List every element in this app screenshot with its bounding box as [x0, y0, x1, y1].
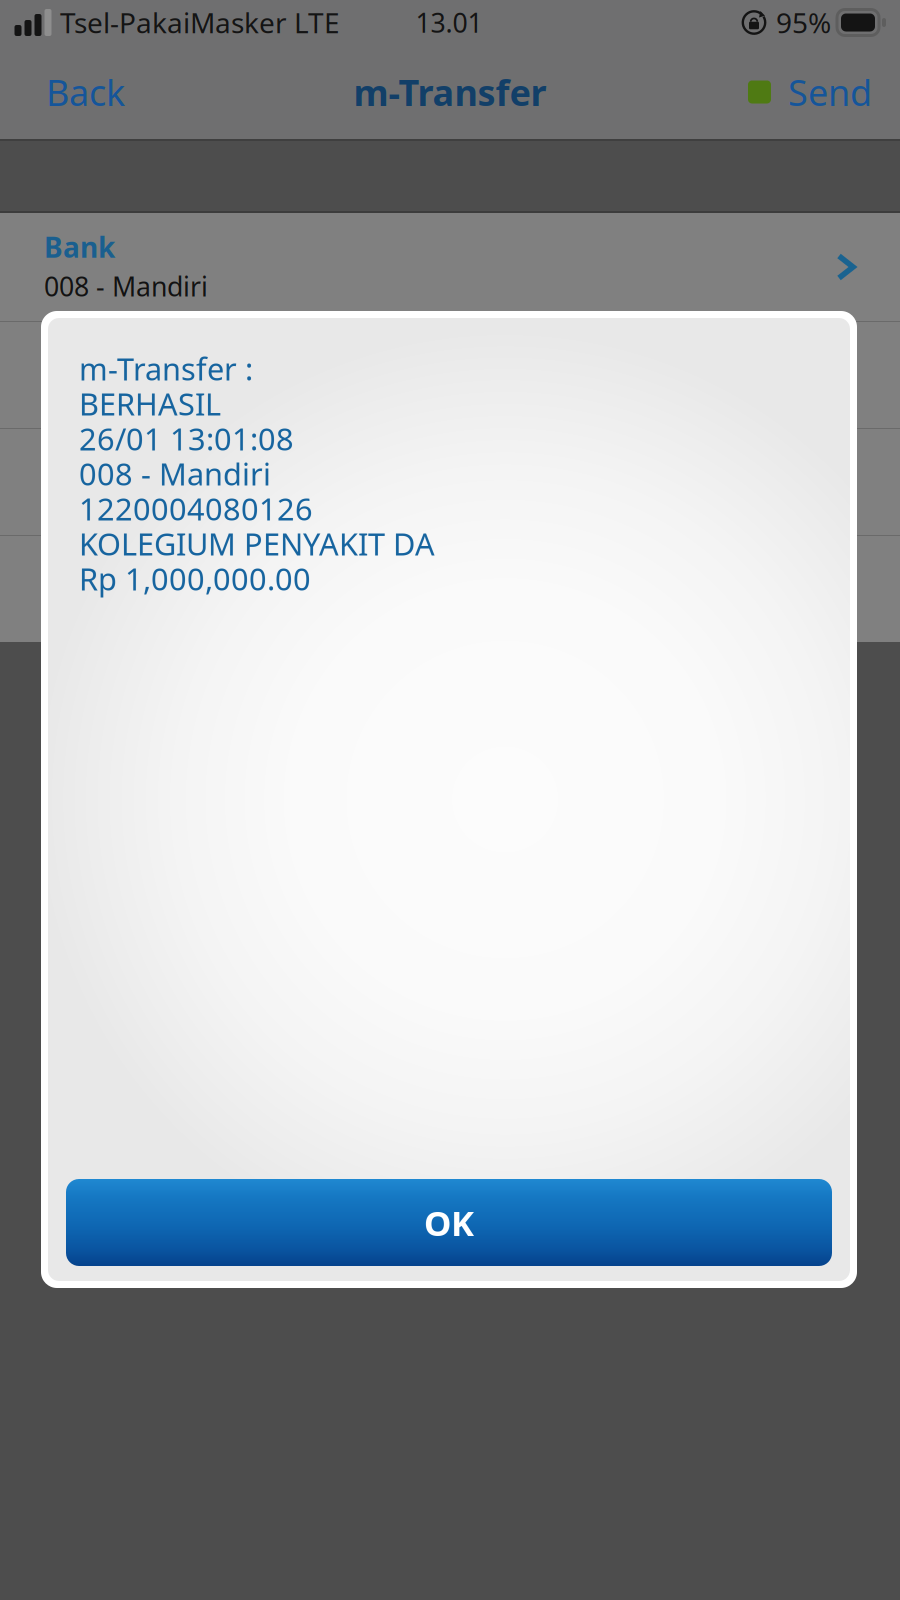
button[interactable]: Transfer field — [0, 322, 900, 428]
staticText: 13.01 — [415, 5, 482, 40]
staticText: KOLEGIUM PENYAKIT DA — [79, 523, 435, 564]
staticText: 008 - Mandiri — [79, 453, 271, 494]
button[interactable]: OK — [66, 1179, 832, 1281]
staticText: 95% — [776, 4, 831, 41]
staticText: OK — [424, 1199, 474, 1245]
staticText: 1220004080126 — [79, 488, 313, 529]
staticText: Back — [46, 68, 125, 116]
button[interactable]: Bank — [0, 213, 900, 321]
staticText: Send — [788, 68, 872, 116]
staticText: Tsel-PakaiMasker LTE — [60, 4, 340, 41]
button[interactable]: Transfer field — [0, 429, 900, 535]
staticText: m-Transfer — [353, 68, 546, 116]
staticText: 008 - Mandiri — [44, 268, 208, 304]
button[interactable]: Back — [0, 45, 151, 139]
staticText: m-Transfer : — [79, 348, 253, 389]
button[interactable]: Send — [722, 45, 900, 139]
staticText: 26/01 13:01:08 — [79, 418, 294, 459]
staticText: Rp 1,000,000.00 — [79, 558, 311, 599]
staticText: Bank — [44, 228, 115, 265]
staticText: BERHASIL — [79, 383, 221, 424]
